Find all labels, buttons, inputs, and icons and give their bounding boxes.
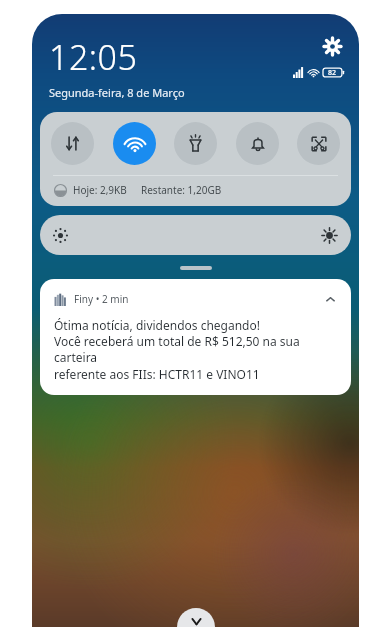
staticText: Ótima notícia, dividendos chegando! bbox=[54, 317, 260, 333]
staticText: 82 bbox=[328, 68, 337, 78]
button[interactable]: Settings bbox=[320, 34, 344, 58]
button[interactable] bbox=[32, 263, 359, 273]
staticText: referente aos FIIs: HCTR11 e VINO11 bbox=[54, 366, 260, 382]
button[interactable]: Flashlight bbox=[174, 122, 217, 165]
staticText: Segunda-feira, 8 de Março bbox=[49, 85, 185, 100]
button[interactable]: Hoje: 2,9KB bbox=[54, 183, 337, 197]
button[interactable]: Mobile data bbox=[51, 122, 94, 165]
staticText: Finy • 2 min bbox=[74, 292, 129, 306]
button[interactable]: Wi-Fi bbox=[113, 122, 156, 165]
staticText: Você receberá um total de R$ 512,50 na s… bbox=[54, 333, 339, 366]
staticText: Hoje: 2,9KB bbox=[73, 183, 127, 197]
button[interactable]: Notifications bbox=[236, 122, 279, 165]
button[interactable]: Finy • 2 min bbox=[40, 279, 351, 395]
button[interactable]: Screenshot bbox=[297, 122, 340, 165]
button[interactable]: Collapse bbox=[321, 290, 339, 308]
staticText: 12:05 bbox=[49, 34, 138, 80]
button[interactable]: Brightness bbox=[40, 215, 351, 255]
staticText: Restante: 1,20GB bbox=[141, 183, 222, 197]
button[interactable]: Close bbox=[177, 608, 215, 627]
